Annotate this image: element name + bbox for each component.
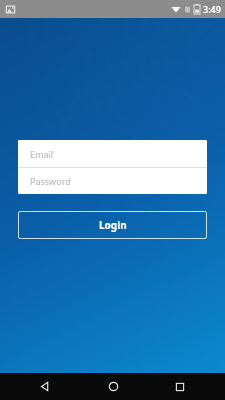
staticText: Email	[30, 148, 54, 160]
button[interactable]: Password	[18, 168, 207, 194]
other: Screenshot notification	[5, 4, 16, 15]
button[interactable]: Recent apps	[157, 373, 203, 400]
staticText: Login	[99, 218, 127, 232]
button[interactable]: Home	[90, 373, 136, 400]
button[interactable]: Back	[22, 373, 68, 400]
button[interactable]: Login	[18, 211, 207, 239]
staticText: 3:49	[203, 3, 221, 15]
button[interactable]: Email	[18, 140, 207, 167]
staticText: Password	[30, 175, 71, 187]
